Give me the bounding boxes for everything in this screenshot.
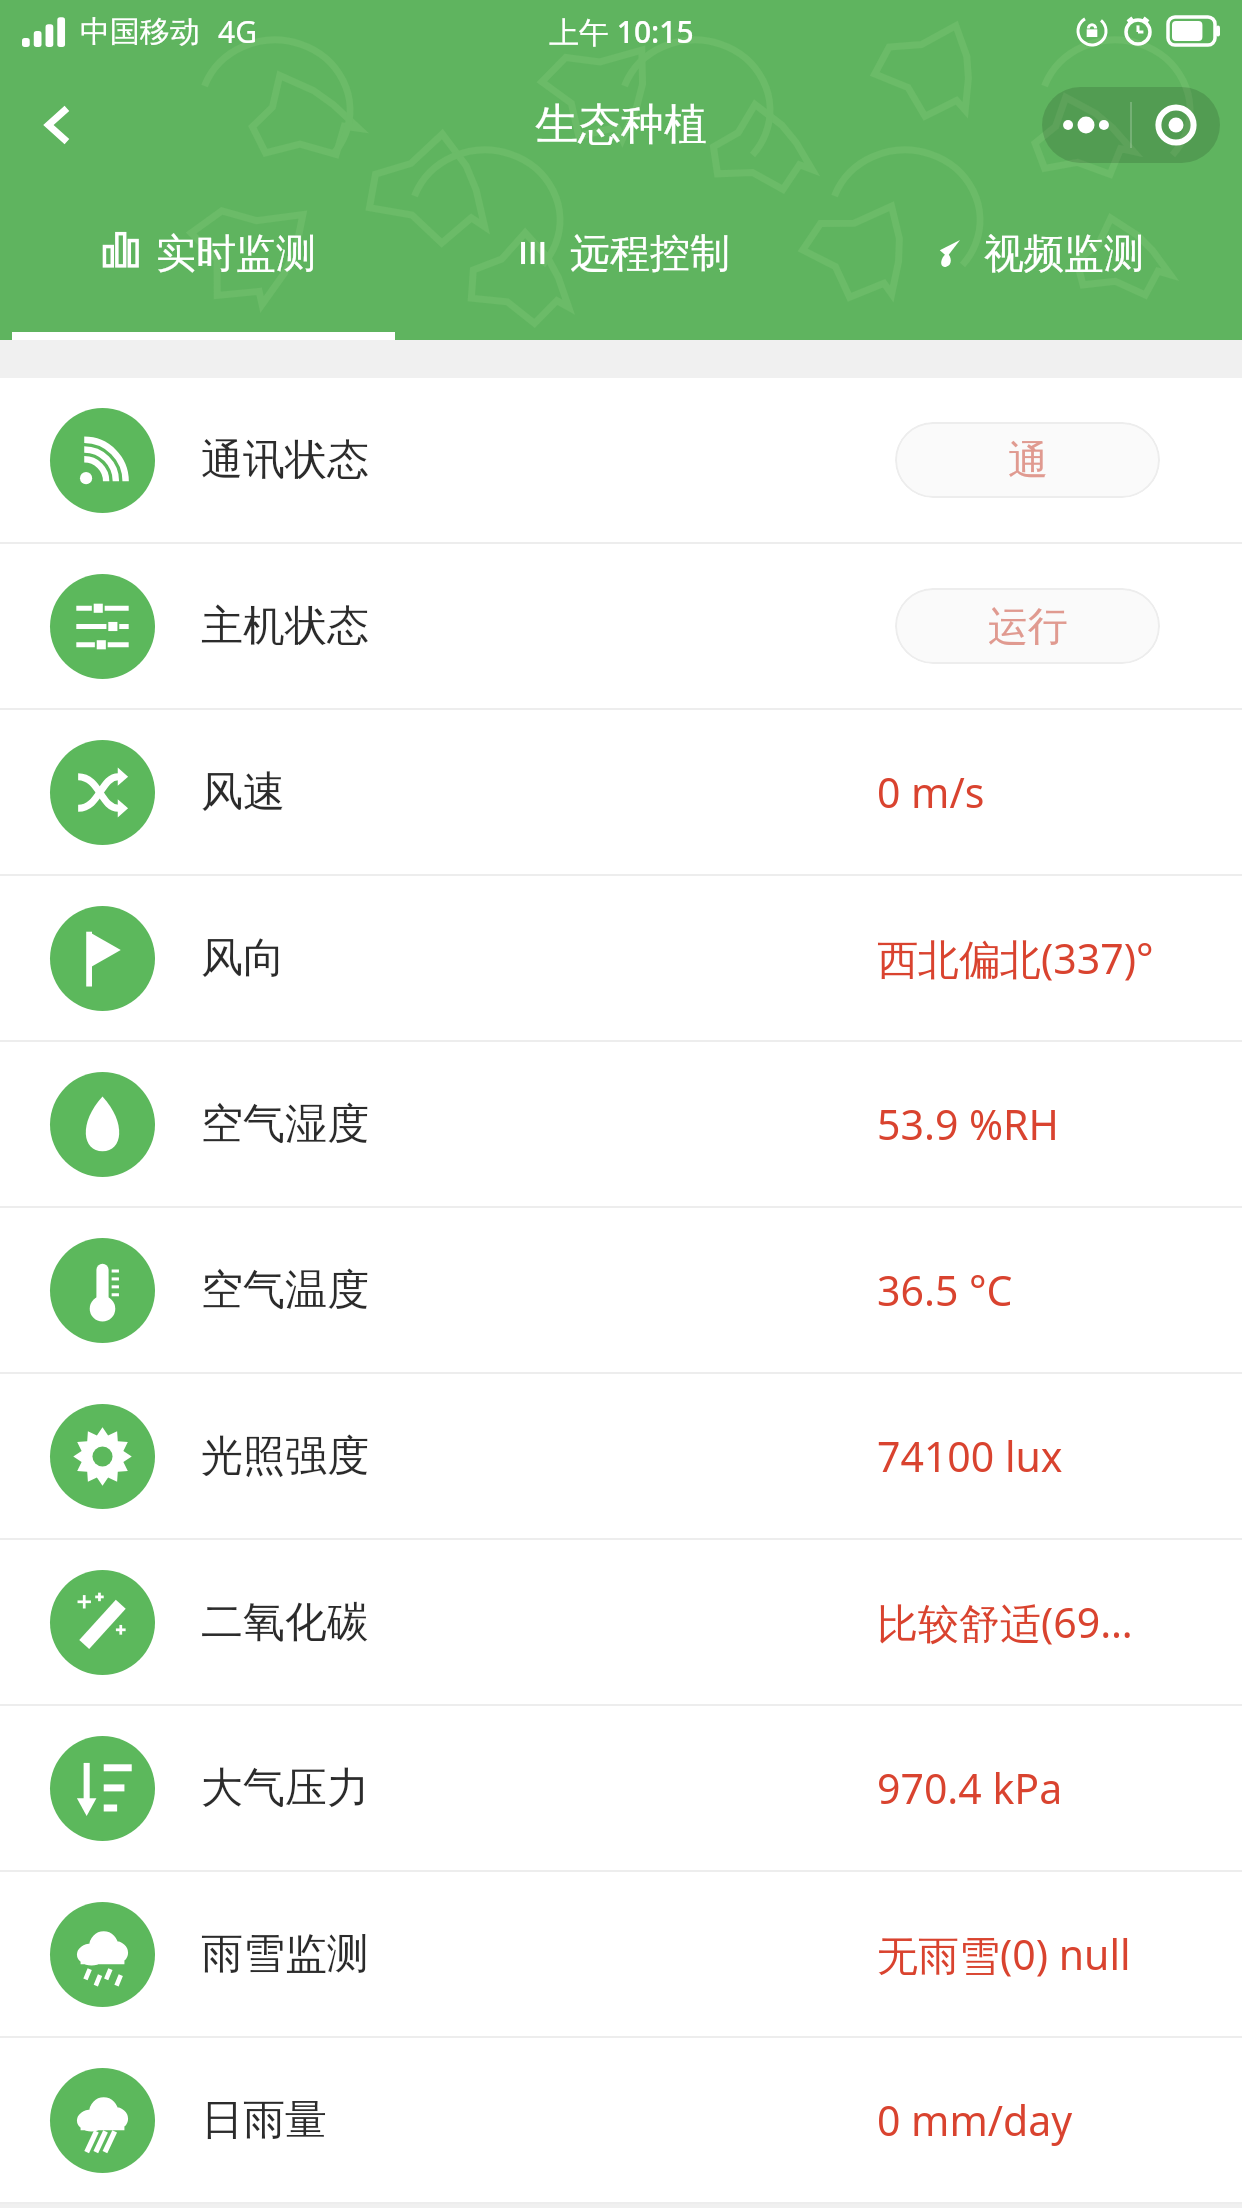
staticText: 970.4 kPa — [877, 1760, 1063, 1816]
button[interactable]: Close — [1132, 87, 1220, 163]
staticText: 比较舒适(69… — [877, 1594, 1133, 1650]
staticText: 光照强度 — [201, 1430, 369, 1483]
button[interactable]: 光照强度 — [0, 1374, 1242, 1538]
staticText: 4G — [218, 11, 257, 52]
staticText: 通讯状态 — [201, 434, 369, 487]
button[interactable]: 大气压力 — [0, 1706, 1242, 1870]
button[interactable]: 视频监测 — [828, 188, 1242, 340]
staticText: 风速 — [201, 766, 285, 819]
button[interactable]: 实时监测 — [0, 188, 414, 340]
staticText: 二氧化碳 — [201, 1596, 369, 1649]
staticText: 36.5 °C — [877, 1262, 1013, 1318]
staticText: 74100 lux — [877, 1428, 1063, 1484]
staticText: 通 — [1008, 435, 1048, 485]
button[interactable]: 风速 — [0, 710, 1242, 874]
staticText: 空气温度 — [201, 1264, 369, 1317]
button[interactable]: Back — [16, 82, 102, 168]
button[interactable]: 空气温度 — [0, 1208, 1242, 1372]
staticText: 生态种植 — [535, 98, 707, 152]
staticText: 远程控制 — [570, 228, 730, 278]
staticText: 空气湿度 — [201, 1098, 369, 1151]
staticText: 日雨量 — [201, 2094, 327, 2147]
button[interactable]: 二氧化碳 — [0, 1540, 1242, 1704]
staticText: 中国移动 — [80, 13, 200, 51]
staticText: 视频监测 — [984, 228, 1144, 278]
staticText: 西北偏北(337)° — [877, 930, 1154, 986]
staticText: 0 mm/day — [877, 2092, 1073, 2148]
staticText: 实时监测 — [156, 228, 316, 278]
staticText: 风向 — [201, 932, 285, 985]
button[interactable]: 日雨量 — [0, 2038, 1242, 2202]
staticText: 主机状态 — [201, 600, 369, 653]
button[interactable]: 远程控制 — [414, 188, 828, 340]
button[interactable]: 雨雪监测 — [0, 1872, 1242, 2036]
staticText: 53.9 %RH — [877, 1096, 1059, 1152]
button[interactable]: 风向 — [0, 876, 1242, 1040]
button[interactable]: More — [1042, 87, 1130, 163]
button[interactable]: 空气湿度 — [0, 1042, 1242, 1206]
button[interactable]: 主机状态 — [0, 544, 1242, 708]
button[interactable]: 通讯状态 — [0, 378, 1242, 542]
staticText: 上午 10:15 — [549, 11, 694, 52]
staticText: 雨雪监测 — [201, 1928, 369, 1981]
staticText: 0 m/s — [877, 764, 985, 820]
staticText: 运行 — [988, 601, 1068, 651]
staticText: 大气压力 — [201, 1762, 369, 1815]
staticText: 无雨雪(0) null — [877, 1926, 1131, 1982]
